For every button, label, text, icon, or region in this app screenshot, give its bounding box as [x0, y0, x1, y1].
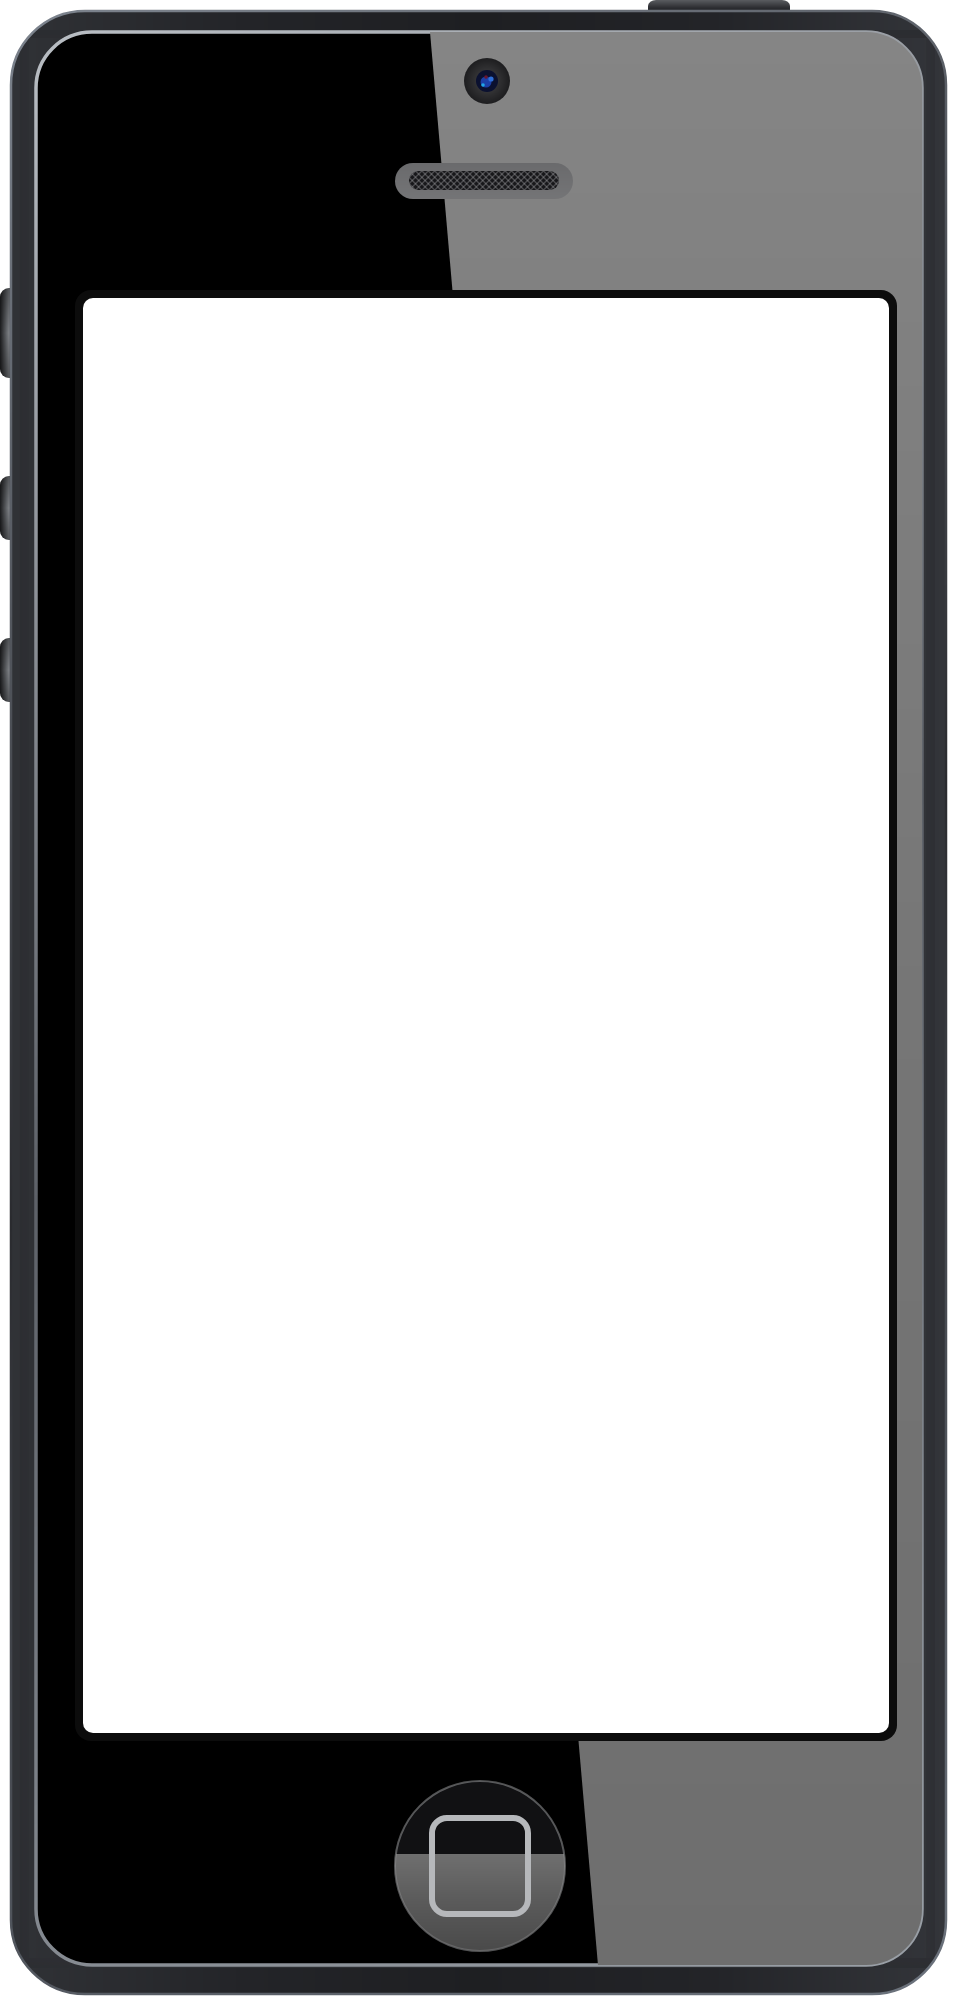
- button[interactable]: iPhone device mockup: [0, 0, 960, 2015]
